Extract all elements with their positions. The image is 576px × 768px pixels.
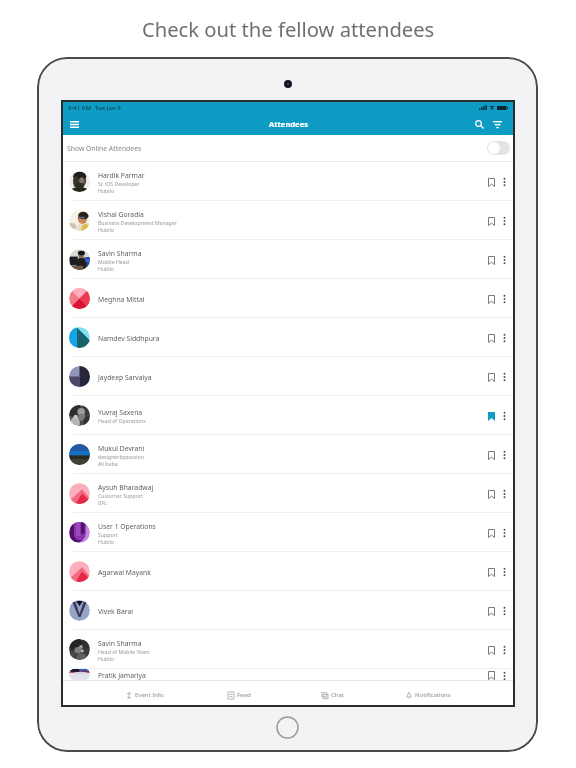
staticText: Meghna Mittal — [98, 295, 145, 304]
staticText: Vivek Barai — [98, 607, 133, 616]
button[interactable]: Savin Sharma — [63, 240, 513, 278]
staticText: Hubilo — [98, 655, 115, 662]
button[interactable]: Aysuh Bharadwaj — [63, 474, 513, 512]
button[interactable]: Notifications — [381, 681, 476, 705]
button[interactable]: Agarwal Mayank — [63, 552, 513, 590]
button[interactable]: Show Online Attendees — [63, 135, 513, 161]
button[interactable]: More options — [498, 521, 510, 545]
button[interactable]: More options — [498, 443, 510, 467]
button[interactable]: Bookmark — [485, 521, 497, 545]
button[interactable]: More options — [498, 287, 510, 311]
button[interactable]: Bookmark — [485, 443, 497, 467]
staticText: Hubilo — [98, 226, 115, 233]
button[interactable]: Mukul Devrani — [63, 435, 513, 473]
button[interactable]: Hardik Parmar — [63, 162, 513, 200]
staticText: Hubilo — [98, 265, 115, 272]
button[interactable]: More options — [498, 404, 510, 428]
staticText: Attendees — [269, 119, 308, 129]
button[interactable]: Yuvraj Saxena — [63, 396, 513, 434]
button[interactable]: Bookmark — [485, 404, 497, 428]
staticText: Mobile Head — [98, 258, 129, 265]
button[interactable]: Bookmark — [485, 287, 497, 311]
staticText: Savin Sharma — [98, 249, 142, 258]
button[interactable]: Bookmark — [485, 248, 497, 272]
button[interactable]: Bookmark — [485, 209, 497, 233]
staticText: Show Online Attendees — [67, 144, 142, 153]
staticText: Namdev Siddhpura — [98, 334, 160, 343]
staticText: Business Development Manager — [98, 219, 177, 226]
staticText: Sr. iOS Developer — [98, 180, 140, 187]
button[interactable]: Vivek Barai — [63, 591, 513, 629]
button[interactable]: More options — [498, 599, 510, 623]
button[interactable]: Bookmark — [485, 365, 497, 389]
staticText: Yuvraj Saxena — [98, 408, 143, 417]
staticText: Savin Sharma — [98, 639, 142, 648]
button[interactable]: Bookmark — [485, 670, 497, 680]
staticText: Pratik Jamariya — [98, 671, 146, 680]
button[interactable]: More options — [498, 638, 510, 662]
button[interactable]: More options — [498, 326, 510, 350]
staticText: Check out the fellow attendees — [142, 15, 435, 43]
staticText: Feed — [237, 691, 251, 699]
button[interactable]: Filter — [488, 114, 507, 135]
staticText: Hubilo — [98, 187, 115, 194]
button[interactable]: Bookmark — [485, 638, 497, 662]
staticText: Hardik Parmar — [98, 171, 145, 180]
staticText: Mukul Devrani — [98, 444, 145, 453]
button[interactable]: Vishal Goradia — [63, 201, 513, 239]
staticText: Event Info — [135, 691, 164, 699]
staticText: User 1 Operations — [98, 522, 156, 531]
button[interactable]: Chat — [286, 681, 381, 705]
button[interactable]: More options — [498, 209, 510, 233]
button[interactable]: User 1 Operations — [63, 513, 513, 551]
button[interactable]: Jaydeep Sarvaiya — [63, 357, 513, 395]
staticText: designerbypassion — [98, 453, 144, 460]
button[interactable]: Search — [470, 114, 488, 135]
staticText: IIFL — [98, 499, 107, 506]
button[interactable]: Bookmark — [485, 482, 497, 506]
staticText: Hubilo — [98, 538, 115, 545]
staticText: Head of Operations — [98, 417, 146, 424]
button[interactable]: Bookmark — [485, 326, 497, 350]
button[interactable]: More options — [498, 365, 510, 389]
button[interactable]: Pratik Jamariya — [63, 669, 513, 680]
staticText: Vishal Goradia — [98, 210, 144, 219]
button[interactable]: Feed — [192, 681, 286, 705]
button[interactable]: More options — [498, 482, 510, 506]
staticText: Customer Support — [98, 492, 143, 499]
button[interactable]: Event Info — [98, 681, 192, 705]
staticText: Agarwal Mayank — [98, 568, 151, 577]
button[interactable]: More options — [498, 670, 510, 680]
button[interactable]: Savin Sharma — [63, 630, 513, 668]
button[interactable]: Namdev Siddhpura — [63, 318, 513, 356]
button[interactable]: Meghna Mittal — [63, 279, 513, 317]
button[interactable]: More options — [498, 170, 510, 194]
button[interactable]: More options — [498, 560, 510, 584]
staticText: Notifications — [415, 691, 451, 699]
staticText: Tue Jan 9 — [95, 104, 121, 112]
staticText: Support — [98, 531, 118, 538]
button[interactable]: Bookmark — [485, 560, 497, 584]
button[interactable]: Menu — [63, 113, 85, 135]
button[interactable]: More options — [498, 248, 510, 272]
button[interactable]: Bookmark — [485, 599, 497, 623]
staticText: 9:41 AM — [68, 104, 91, 112]
staticText: Head of Mobile Team — [98, 648, 150, 655]
button[interactable]: Bookmark — [485, 170, 497, 194]
staticText: Chat — [331, 691, 345, 699]
staticText: Jaydeep Sarvaiya — [98, 373, 152, 382]
staticText: Ali baba — [98, 460, 118, 467]
staticText: Aysuh Bharadwaj — [98, 483, 154, 492]
